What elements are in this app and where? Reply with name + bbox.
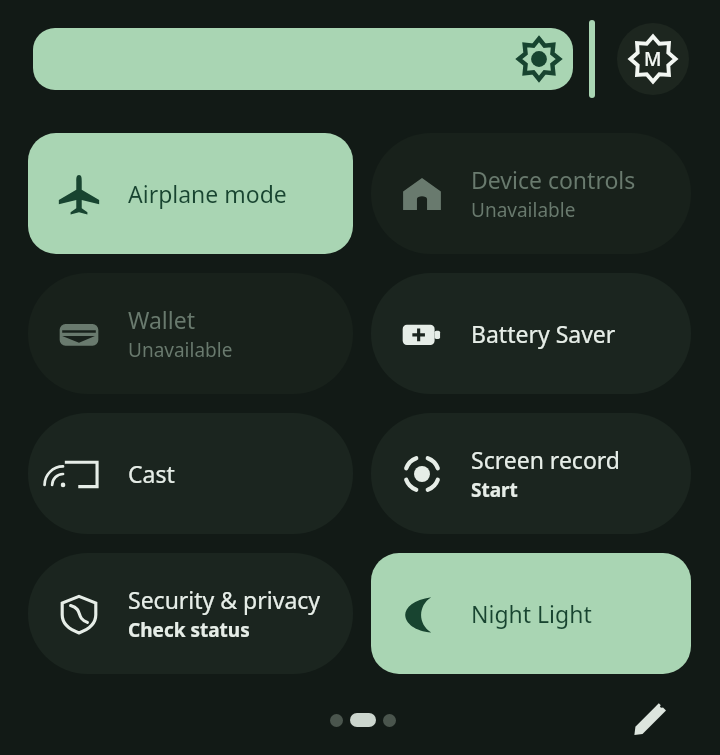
button[interactable]: Security & privacy [28, 553, 353, 674]
button[interactable]: Pages [330, 713, 396, 727]
button[interactable]: Wallet [28, 273, 353, 394]
button[interactable]: Brightness [33, 28, 573, 90]
staticText: Start [471, 477, 518, 503]
button[interactable]: Night Light [371, 553, 691, 674]
button[interactable]: Edit [626, 695, 674, 743]
staticText: Unavailable [128, 337, 233, 363]
staticText: M [644, 46, 662, 72]
staticText: Battery Saver [471, 318, 616, 349]
staticText: Device controls [471, 164, 636, 195]
button[interactable]: Mobile data [617, 23, 689, 95]
staticText: Airplane mode [128, 178, 287, 209]
button[interactable]: Device controls [371, 133, 691, 254]
staticText: Check status [128, 617, 250, 643]
staticText: Cast [128, 458, 175, 489]
button[interactable]: Cast [28, 413, 353, 534]
staticText: Night Light [471, 598, 592, 629]
button[interactable]: Battery Saver [371, 273, 691, 394]
button[interactable]: Screen record [371, 413, 691, 534]
staticText: Security & privacy [128, 584, 321, 615]
button[interactable]: Airplane mode [28, 133, 353, 254]
staticText: Unavailable [471, 197, 576, 223]
staticText: Wallet [128, 304, 195, 335]
staticText: Screen record [471, 444, 620, 475]
